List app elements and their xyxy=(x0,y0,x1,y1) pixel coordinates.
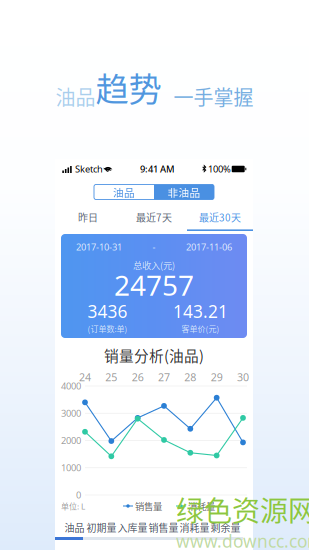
staticText: 24 xyxy=(79,370,91,384)
staticText: 昨日 xyxy=(78,210,98,224)
staticText: 26 xyxy=(132,370,144,384)
staticText: 销售量 xyxy=(148,520,178,535)
button[interactable]: 油品 xyxy=(94,184,154,199)
staticText: 9:41 AM xyxy=(140,163,175,175)
button[interactable]: 入库量 xyxy=(117,518,148,537)
staticText: 最近7天 xyxy=(136,210,172,224)
staticText: 趋势 xyxy=(95,63,161,111)
staticText: 初期量 xyxy=(86,520,116,535)
button[interactable]: 销售量 xyxy=(148,518,179,537)
staticText: 2017-10-31 xyxy=(76,241,122,253)
button[interactable]: 剩余量 xyxy=(210,518,241,537)
button[interactable]: 消耗量 xyxy=(179,518,210,537)
button[interactable]: 非油品 xyxy=(154,184,214,199)
staticText: (订单数:单) xyxy=(87,323,127,334)
staticText: 油品 xyxy=(55,82,95,111)
staticText: 28 xyxy=(184,370,196,384)
staticText: 2000 xyxy=(61,434,81,447)
button[interactable]: 最近7天 xyxy=(121,205,187,231)
staticText: 非油品 xyxy=(167,184,200,200)
staticText: 27 xyxy=(158,370,170,384)
staticText: 3000 xyxy=(61,407,81,419)
staticText: 总收入(元) xyxy=(133,258,175,272)
staticText: 2017-11-06 xyxy=(186,241,232,253)
staticText: 29 xyxy=(211,370,223,384)
staticText: www.downcc.com xyxy=(176,529,309,550)
staticText: 入库量 xyxy=(117,520,147,535)
staticText: 消耗量 xyxy=(188,499,215,513)
button[interactable]: 最近30天 xyxy=(187,205,253,231)
button[interactable]: 昨日 xyxy=(55,205,121,231)
staticText: 24757 xyxy=(114,266,194,304)
staticText: 油品 xyxy=(113,184,135,200)
staticText: 油品 xyxy=(64,520,84,535)
staticText: 销量分析(油品) xyxy=(104,344,204,366)
staticText: 销售量 xyxy=(135,499,162,513)
staticText: 30 xyxy=(237,370,249,384)
button[interactable]: 初期量 xyxy=(86,518,117,537)
staticText: Sketch xyxy=(73,163,103,175)
staticText: 剩余量 xyxy=(210,520,240,535)
staticText: 143.21 xyxy=(173,300,228,323)
staticText: 最近30天 xyxy=(199,210,241,224)
staticText: 1000 xyxy=(61,462,81,474)
staticText: 一手掌握 xyxy=(161,82,253,111)
staticText: 绿色资源网 xyxy=(176,489,309,529)
staticText: 0 xyxy=(76,489,81,501)
staticText: - xyxy=(152,241,155,253)
staticText: 单位: L xyxy=(61,500,85,512)
staticText: 25 xyxy=(105,370,117,384)
staticText: 4000 xyxy=(61,380,81,392)
button[interactable]: 油品 xyxy=(63,518,86,537)
staticText: 100% xyxy=(208,163,231,175)
staticText: 3436 xyxy=(87,300,127,323)
staticText: 消耗量 xyxy=(179,520,209,535)
staticText: 客单价(元) xyxy=(181,323,219,334)
